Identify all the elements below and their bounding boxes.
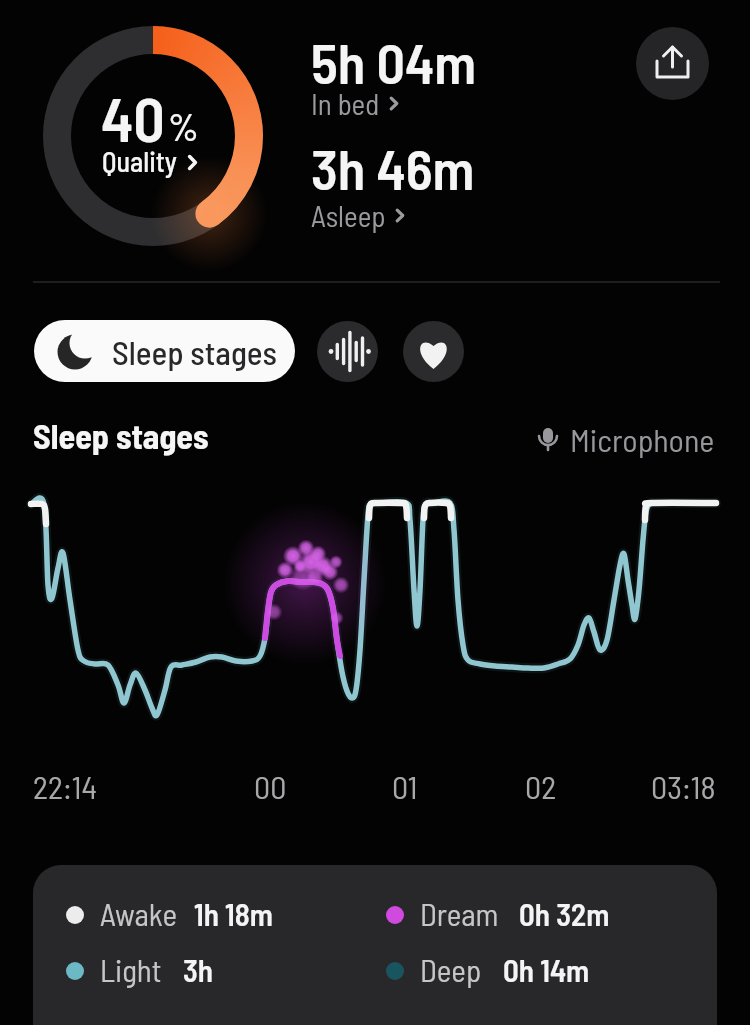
staticText: Dream: [420, 895, 499, 932]
staticText: 40: [101, 80, 165, 154]
staticText: Light: [100, 951, 162, 988]
staticText: 3h: [183, 951, 214, 988]
button[interactable]: [636, 27, 709, 100]
staticText: %: [168, 103, 199, 149]
button[interactable]: Awake: [33, 865, 717, 1025]
staticText: Sleep stages: [112, 332, 277, 372]
button[interactable]: Asleep: [311, 198, 406, 233]
button[interactable]: Quality: [102, 144, 199, 178]
staticText: 22:14: [33, 767, 97, 805]
button[interactable]: [403, 321, 464, 382]
staticText: Quality: [102, 144, 177, 178]
staticText: Deep: [420, 951, 482, 988]
staticText: 01: [392, 767, 418, 805]
staticText: Microphone: [570, 420, 715, 458]
staticText: 00: [254, 767, 287, 805]
staticText: Awake: [100, 895, 178, 932]
button[interactable]: Sleep stages: [34, 320, 295, 382]
button[interactable]: Microphone: [535, 420, 715, 458]
staticText: 1h 18m: [194, 895, 273, 932]
staticText: 0h 32m: [519, 895, 610, 932]
button[interactable]: [317, 321, 378, 382]
staticText: 3h 46m: [311, 134, 475, 201]
staticText: 5h 04m: [311, 28, 477, 95]
staticText: Sleep stages: [33, 415, 209, 456]
staticText: 03:18: [651, 767, 716, 805]
staticText: In bed: [311, 86, 380, 121]
staticText: 0h 14m: [503, 951, 590, 988]
button[interactable]: In bed: [311, 86, 400, 121]
staticText: Asleep: [311, 198, 386, 233]
staticText: 02: [525, 767, 557, 805]
